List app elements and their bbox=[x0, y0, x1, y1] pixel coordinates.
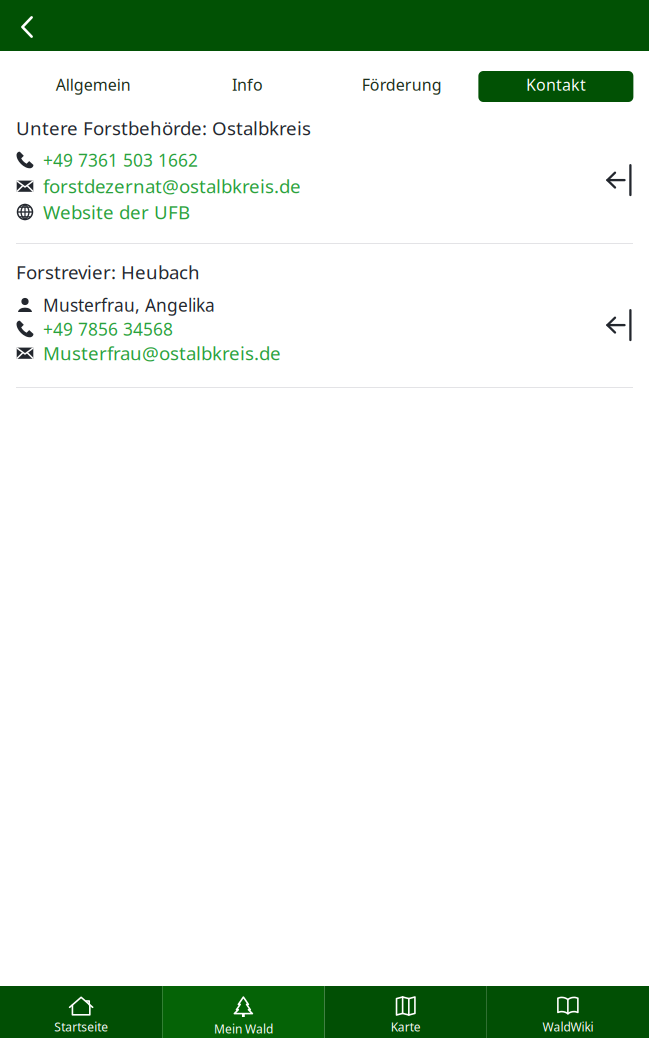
staticText: Untere Forstbehörde: Ostalbkreis bbox=[16, 116, 311, 140]
button[interactable]: Info bbox=[170, 71, 324, 102]
staticText: Info bbox=[232, 74, 263, 95]
button[interactable]: Mein Wald bbox=[162, 986, 324, 1038]
button[interactable]: WaldWiki bbox=[487, 986, 649, 1038]
button[interactable]: forstdezernat@ostalbkreis.de bbox=[16, 173, 310, 199]
button[interactable]: Route anzeigen bbox=[605, 293, 633, 365]
staticText: Website der UFB bbox=[43, 200, 190, 224]
staticText: Förderung bbox=[362, 74, 442, 95]
button[interactable]: Website der UFB bbox=[16, 199, 310, 225]
staticText: Allgemein bbox=[56, 74, 131, 95]
staticText: Kontakt bbox=[526, 74, 586, 95]
button[interactable]: Startseite bbox=[0, 986, 162, 1038]
staticText: Musterfrau, Angelika bbox=[43, 293, 215, 316]
staticText: Musterfrau@ostalbkreis.de bbox=[43, 341, 281, 365]
button[interactable]: Zurück bbox=[0, 0, 54, 51]
staticText: +49 7361 503 1662 bbox=[43, 148, 198, 171]
staticText: Forstrevier: Heubach bbox=[16, 260, 200, 284]
button[interactable]: +49 7856 34568 bbox=[16, 317, 310, 341]
staticText: Startseite bbox=[54, 1019, 108, 1035]
staticText: forstdezernat@ostalbkreis.de bbox=[43, 174, 301, 198]
button[interactable]: Allgemein bbox=[16, 71, 170, 102]
button[interactable]: Förderung bbox=[324, 71, 479, 102]
button[interactable]: Musterfrau@ostalbkreis.de bbox=[16, 341, 310, 365]
staticText: Mein Wald bbox=[214, 1021, 273, 1037]
button[interactable]: Kontakt bbox=[479, 71, 633, 102]
staticText: WaldWiki bbox=[542, 1019, 593, 1035]
button[interactable]: +49 7361 503 1662 bbox=[16, 147, 310, 173]
staticText: Karte bbox=[391, 1019, 421, 1035]
button[interactable]: Karte bbox=[324, 986, 487, 1038]
button[interactable]: Musterfrau, Angelika bbox=[16, 293, 310, 317]
button[interactable]: Route anzeigen bbox=[605, 147, 633, 225]
staticText: +49 7856 34568 bbox=[43, 317, 173, 340]
